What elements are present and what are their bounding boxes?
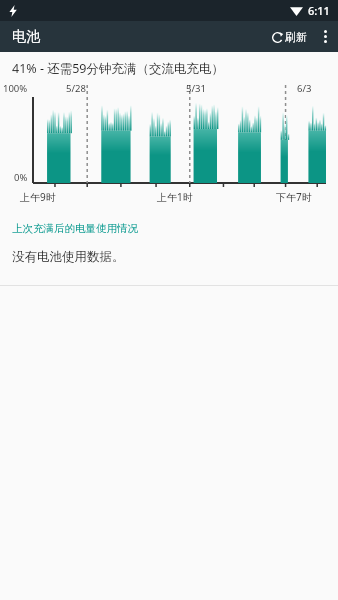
staticText: 6/3 <box>297 82 312 95</box>
staticText: 刷新 <box>285 30 307 44</box>
staticText: 5/28 <box>66 82 86 95</box>
staticText: 下午7时 <box>276 190 312 204</box>
staticText: 41% - 还需59分钟充满（交流电充电） <box>12 60 225 77</box>
staticText: 上午1时 <box>157 190 193 204</box>
button[interactable]: 上次充满后的电量使用情况 <box>0 220 338 237</box>
staticText: 上次充满后的电量使用情况 <box>12 222 138 235</box>
staticText: 0% <box>14 171 28 184</box>
staticText: 上午9时 <box>20 190 56 204</box>
staticText: 5/31 <box>186 82 206 95</box>
button[interactable]: 刷新 <box>267 25 312 49</box>
staticText: 电池 <box>12 28 40 46</box>
button[interactable]: More options <box>312 21 338 52</box>
staticText: 6:11 <box>308 3 330 18</box>
staticText: 100% <box>3 82 28 95</box>
staticText: 没有电池使用数据。 <box>12 249 125 265</box>
